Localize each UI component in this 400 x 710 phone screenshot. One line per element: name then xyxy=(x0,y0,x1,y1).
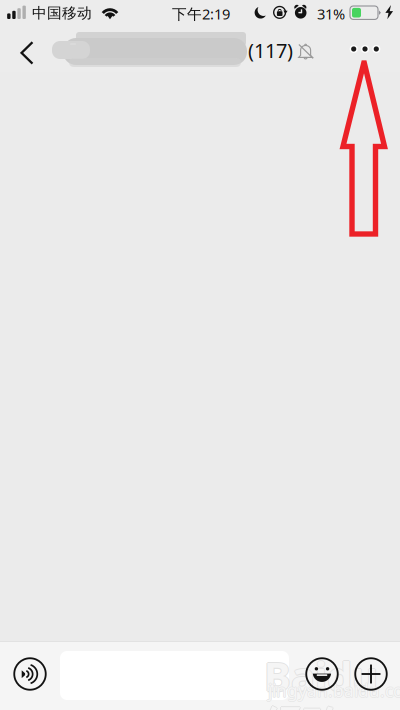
button[interactable]: Voice message xyxy=(8,652,52,696)
staticText: jingyan.baidu.com xyxy=(268,678,400,701)
button[interactable]: More actions xyxy=(349,652,393,696)
staticText: 中国移动 xyxy=(32,4,92,22)
staticText: jingyan.baidu.com xyxy=(268,679,400,702)
staticText: jingyan.baidu.com xyxy=(269,679,400,702)
staticText: Baidu 经验 xyxy=(265,649,379,710)
button[interactable]: Message input field xyxy=(60,651,289,700)
staticText: (117) xyxy=(248,37,293,64)
button[interactable]: Back xyxy=(6,30,48,76)
button[interactable]: Emoji xyxy=(300,652,344,696)
staticText: Baidu 经验 xyxy=(264,649,378,710)
staticText: Baidu 经验 xyxy=(263,649,377,710)
staticText: jingyan.baidu.com xyxy=(267,679,400,702)
staticText: 下午2:19 xyxy=(172,4,230,23)
button[interactable]: More options xyxy=(342,26,388,72)
staticText: 31% xyxy=(317,4,345,23)
staticText: jingyan.baidu.com xyxy=(268,680,400,703)
staticText: Baidu 经验 xyxy=(264,650,378,710)
staticText: Baidu 经验 xyxy=(264,648,378,710)
